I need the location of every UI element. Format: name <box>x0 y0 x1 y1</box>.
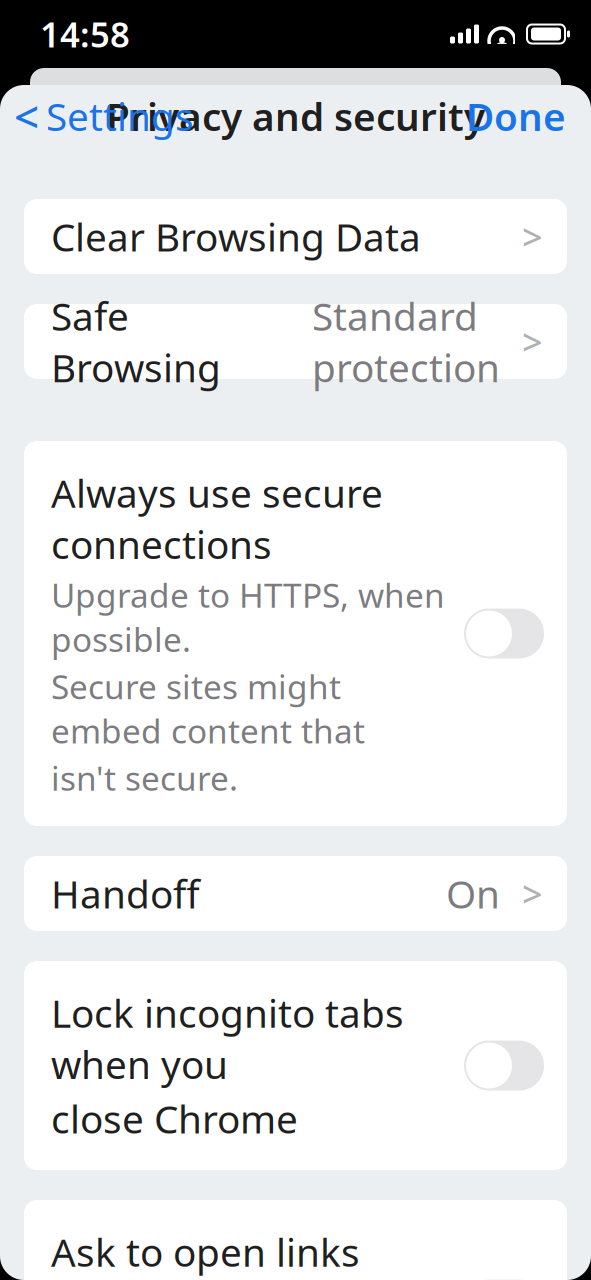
button[interactable]: Handoff <box>0 856 591 931</box>
staticText: Privacy and security <box>106 90 485 142</box>
staticText: > <box>522 870 543 917</box>
staticText: On <box>446 868 500 919</box>
staticText: Upgrade to HTTPS, when possible. <box>51 573 445 661</box>
button[interactable]: Always use secure connections <box>0 441 591 826</box>
staticText: Clear Browsing Data <box>51 211 421 262</box>
button[interactable]: < <box>0 79 194 153</box>
staticText: Always use secure connections <box>51 467 383 570</box>
staticText: Done <box>466 90 566 142</box>
staticText: isn't secure. <box>51 756 238 800</box>
button[interactable]: Safe Browsing <box>0 304 591 379</box>
button[interactable]: Ask to open links from other <box>0 1200 591 1280</box>
staticText: Standard protection <box>312 290 500 393</box>
staticText: Safe Browsing <box>51 290 221 393</box>
button[interactable]: Done <box>466 82 591 150</box>
staticText: Lock incognito tabs when you <box>51 987 404 1090</box>
staticText: Ask to open links from other <box>51 1226 360 1280</box>
button[interactable]: Lock incognito tabs when you <box>0 961 591 1170</box>
staticText: Handoff <box>51 868 200 919</box>
staticText: > <box>522 318 543 365</box>
staticText: Secure sites might embed content that <box>51 664 365 753</box>
staticText: 14:58 <box>40 11 130 57</box>
staticText: > <box>522 213 543 260</box>
staticText: Settings <box>46 90 194 142</box>
button[interactable]: Clear Browsing Data <box>0 199 591 274</box>
staticText: close Chrome <box>51 1093 298 1144</box>
staticText: < <box>14 87 39 145</box>
